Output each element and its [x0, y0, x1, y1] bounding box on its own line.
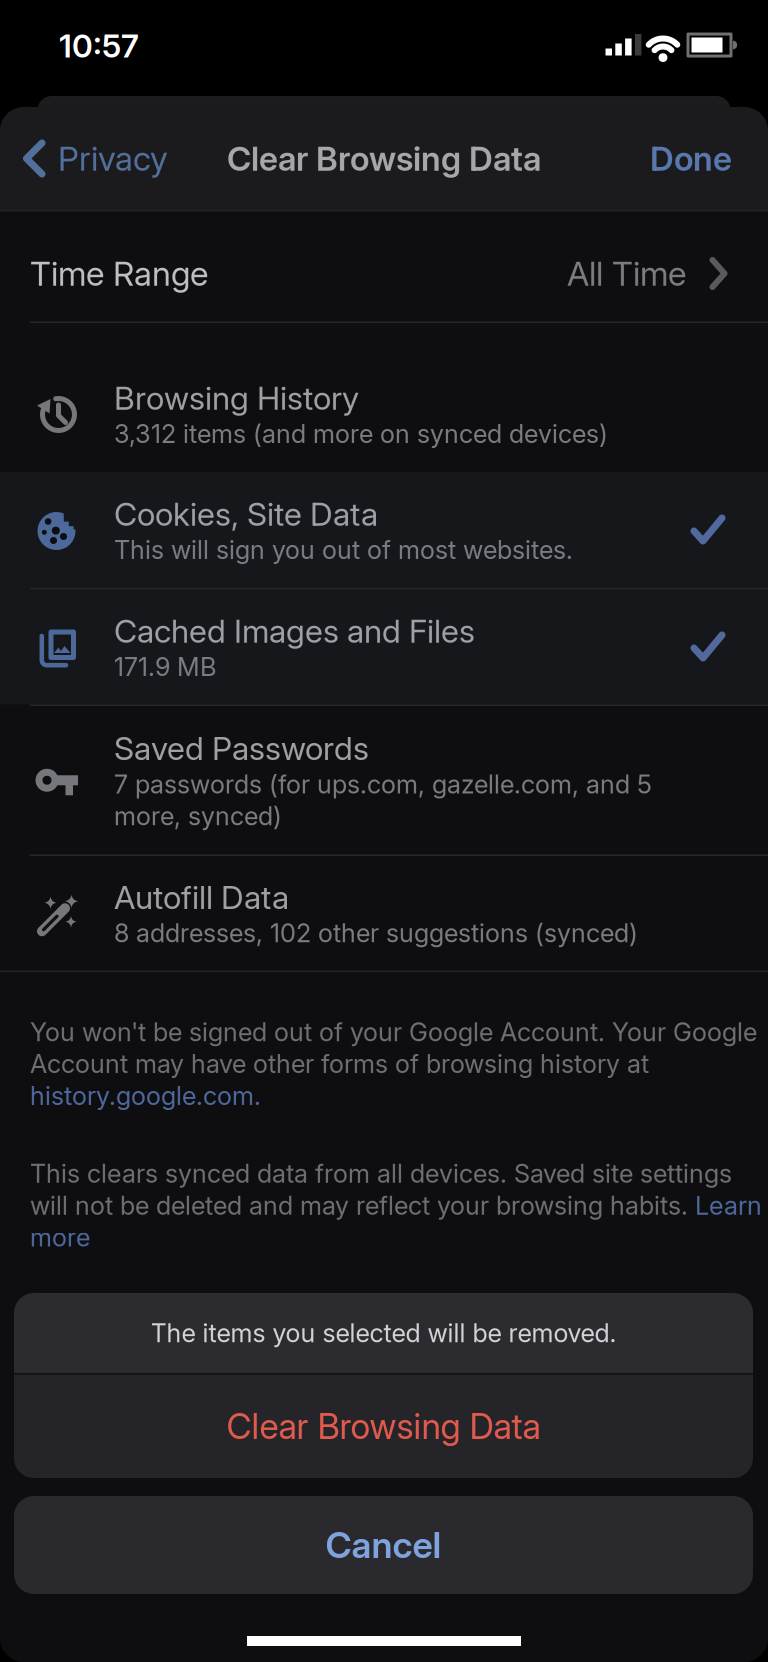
staticText: All Time — [567, 254, 686, 293]
staticText: Cancel — [325, 1524, 441, 1566]
staticText: Clear Browsing Data — [226, 1406, 540, 1447]
staticText: Time Range — [30, 254, 208, 293]
staticText: 8 addresses, 102 other suggestions (sync… — [114, 918, 638, 948]
staticText: more, synced) — [114, 801, 282, 831]
staticText: This will sign you out of most websites. — [114, 535, 573, 565]
staticText: 10:57 — [59, 27, 139, 65]
button[interactable]: Cookies, Site Data — [0, 472, 768, 588]
staticText: Saved Passwords — [114, 729, 369, 767]
staticText: Cached Images and Files — [114, 612, 475, 650]
staticText: 3,312 items (and more on synced devices) — [114, 419, 608, 449]
button[interactable]: history.google.com. — [30, 1081, 261, 1111]
staticText: more — [30, 1222, 90, 1252]
button[interactable]: Clear Browsing Data — [14, 1375, 753, 1478]
staticText: Account may have other forms of browsing… — [30, 1049, 649, 1079]
button[interactable]: Time Range — [0, 211, 768, 321]
staticText: will not be deleted and may reflect your… — [30, 1190, 695, 1220]
staticText: Done — [650, 139, 732, 178]
button[interactable]: Saved Passwords — [0, 706, 768, 854]
button[interactable]: Cached Images and Files — [0, 589, 768, 704]
button[interactable]: Learn more — [30, 1222, 90, 1252]
staticText: You won't be signed out of your Google A… — [30, 1017, 757, 1047]
staticText: Browsing History — [114, 379, 359, 417]
staticText: Clear Browsing Data — [227, 139, 541, 178]
button[interactable]: Done — [650, 139, 768, 178]
staticText: Privacy — [58, 139, 168, 178]
staticText: This clears synced data from all devices… — [30, 1159, 732, 1189]
button[interactable]: Autofill Data — [0, 856, 768, 970]
staticText: The items you selected will be removed. — [150, 1318, 616, 1348]
button[interactable]: Browsing History — [0, 356, 768, 472]
staticText: 7 passwords (for ups.com, gazelle.com, a… — [114, 769, 652, 799]
staticText: Cookies, Site Data — [114, 495, 378, 533]
staticText: Autofill Data — [114, 878, 289, 916]
button[interactable]: Privacy — [0, 139, 168, 178]
button[interactable]: Cancel — [14, 1496, 753, 1594]
staticText: history.google.com. — [30, 1081, 261, 1111]
staticText: 171.9 MB — [114, 652, 216, 682]
staticText: Learn — [695, 1190, 762, 1220]
